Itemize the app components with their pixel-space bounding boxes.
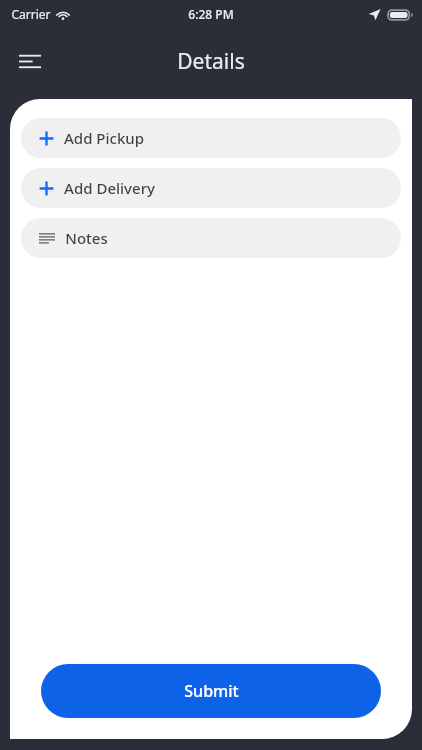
button[interactable]: Menu (8, 39, 52, 83)
button[interactable]: Notes (21, 218, 401, 258)
staticText: Submit (184, 680, 239, 702)
staticText: Add Delivery (64, 178, 155, 198)
staticText: Add Pickup (64, 128, 144, 148)
button[interactable]: Add Pickup (21, 118, 401, 158)
staticText: Notes (65, 228, 108, 248)
staticText: Details (177, 47, 245, 76)
staticText: Carrier (11, 6, 51, 22)
staticText: 6:28 PM (188, 6, 234, 22)
button[interactable]: Submit (41, 664, 381, 718)
button[interactable]: Add Delivery (21, 168, 401, 208)
